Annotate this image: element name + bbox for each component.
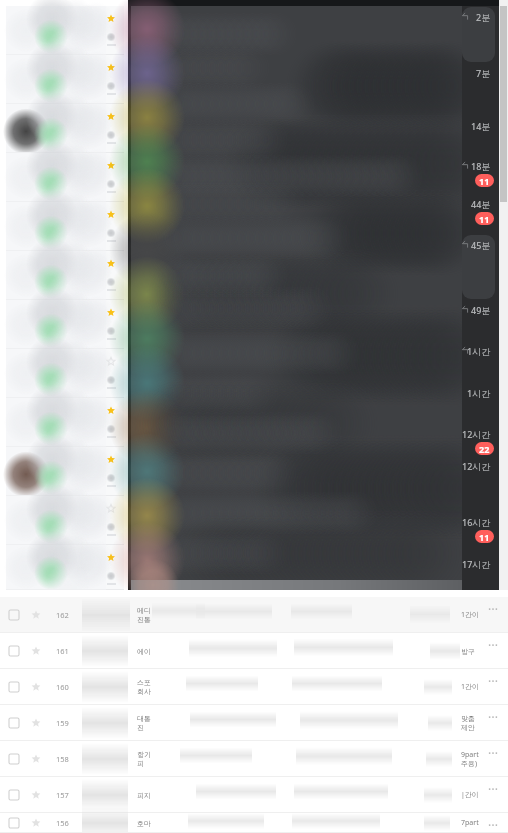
button[interactable]: More options (486, 603, 500, 617)
button[interactable]: More options (486, 783, 500, 797)
staticText: 7분 (476, 67, 491, 79)
button[interactable] (0, 153, 128, 202)
staticText: 에이 (137, 647, 151, 656)
staticText: 7part (461, 818, 479, 828)
staticText: 44분 (471, 198, 491, 210)
button[interactable]: 1시간 (462, 341, 499, 382)
button[interactable] (0, 104, 128, 153)
button[interactable]: 161 (0, 633, 508, 669)
button[interactable] (0, 251, 128, 300)
staticText: 22 (479, 443, 490, 455)
button[interactable] (0, 6, 128, 55)
staticText: 11 (479, 175, 490, 187)
staticText: 1간이 (461, 682, 480, 692)
button[interactable]: 158 (0, 741, 508, 777)
button[interactable]: 156 (0, 813, 508, 833)
staticText: 1간이 (461, 610, 480, 620)
button[interactable]: 49분 (462, 300, 499, 340)
button[interactable]: 162 (0, 597, 508, 633)
staticText: 14분 (471, 120, 491, 132)
button[interactable] (0, 496, 128, 545)
button[interactable] (0, 202, 128, 251)
staticText: 157 (56, 790, 69, 800)
button[interactable]: More options (486, 711, 500, 725)
button[interactable]: 17시간 (462, 554, 499, 589)
button[interactable]: More options (486, 639, 500, 653)
staticText: 45분 (471, 239, 491, 251)
staticText: 11 (479, 531, 490, 543)
button[interactable]: 160 (0, 669, 508, 705)
staticText: |간이 (461, 790, 479, 800)
staticText: 피지 (137, 791, 151, 800)
button[interactable] (0, 55, 128, 104)
staticText: 158 (56, 754, 69, 764)
button[interactable] (0, 398, 128, 447)
button[interactable]: More options (486, 747, 500, 761)
button[interactable]: 12시간 (462, 456, 499, 511)
staticText: 1시간 (467, 387, 491, 399)
button[interactable]: 18분 (462, 156, 499, 193)
button[interactable]: 12시간 (462, 424, 499, 455)
staticText: 항기 피 (137, 750, 151, 768)
staticText: 스포 회사 (137, 678, 151, 696)
button[interactable]: More options (486, 675, 500, 689)
staticText: 호마 (137, 819, 151, 828)
button[interactable] (0, 300, 128, 349)
staticText: 9part 주용) (461, 750, 479, 768)
staticText: 18분 (471, 160, 491, 172)
button[interactable]: 45분 (462, 235, 499, 299)
button[interactable]: 16시간 (462, 512, 499, 553)
staticText: 11 (479, 213, 490, 225)
button[interactable]: More options (486, 819, 500, 833)
button[interactable]: 14분 (462, 116, 499, 155)
staticText: 159 (56, 718, 69, 728)
staticText: 1시간 (467, 345, 491, 357)
button[interactable] (0, 349, 128, 398)
staticText: 메디 진통 (137, 606, 151, 624)
staticText: 2분 (476, 11, 491, 23)
button[interactable] (0, 545, 128, 590)
staticText: 16시간 (462, 516, 491, 528)
staticText: 대통 진 (137, 714, 151, 732)
button[interactable]: 157 (0, 777, 508, 813)
staticText: 12시간 (462, 460, 491, 472)
staticText: 162 (56, 610, 69, 620)
staticText: 방구 (461, 647, 475, 656)
button[interactable] (0, 447, 128, 496)
staticText: 맞춤 제안 (461, 714, 475, 732)
staticText: 17시간 (462, 558, 491, 570)
button[interactable]: 7분 (462, 63, 499, 115)
button[interactable]: 44분 (462, 194, 499, 234)
staticText: 49분 (471, 304, 491, 316)
button[interactable]: 1시간 (462, 383, 499, 423)
staticText: 160 (56, 682, 69, 692)
staticText: 12시간 (462, 428, 491, 440)
button[interactable]: 159 (0, 705, 508, 741)
staticText: 156 (56, 818, 69, 828)
button[interactable]: 2분 (462, 7, 499, 62)
staticText: 161 (56, 646, 69, 656)
